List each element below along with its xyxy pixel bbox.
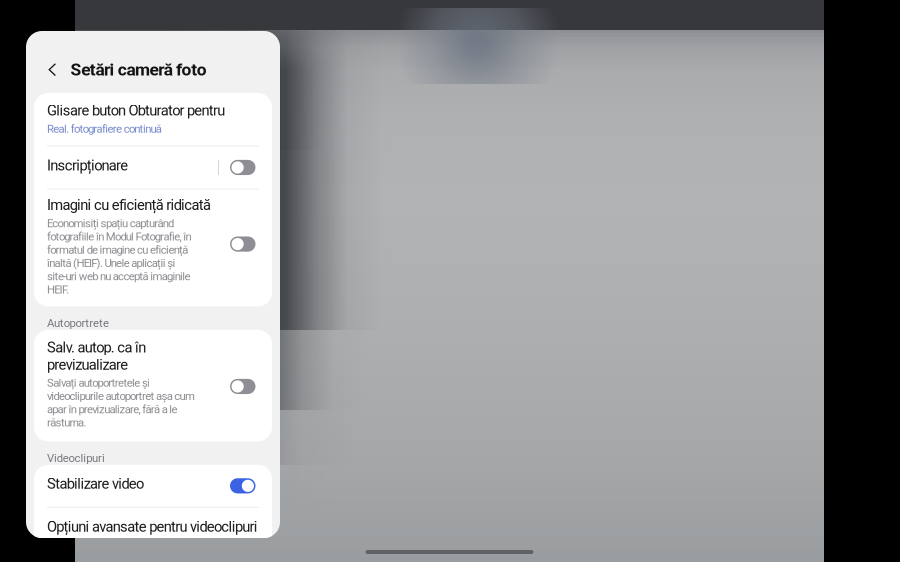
button[interactable]: Imagini cu eficiență ridicată	[34, 189, 272, 306]
staticText: Salvați autoportretele și videoclipurile…	[47, 376, 195, 429]
staticText: Autoportrete	[47, 317, 109, 330]
button[interactable]: Glisare buton Obturator pentru	[34, 93, 272, 145]
button[interactable]: Stabilizare video	[34, 465, 272, 507]
staticText: Videoclipuri	[47, 452, 105, 465]
staticText: Stabilizare video	[47, 475, 144, 492]
staticText: Opțiuni avansate pentru videoclipuri	[47, 518, 258, 535]
staticText: Inscripționare	[47, 157, 128, 174]
button[interactable]: Inscripționare	[34, 146, 272, 188]
staticText: Economisiți spațiu capturând fotografiil…	[47, 217, 191, 296]
staticText: Setări cameră foto	[71, 59, 207, 80]
staticText: Glisare buton Obturator pentru	[47, 102, 225, 119]
staticText: Real. fotografiere continuă	[47, 122, 162, 135]
staticText: Salv. autop. ca în previzualizare	[47, 339, 146, 373]
staticText: Imagini cu eficiență ridicată	[47, 196, 211, 214]
button[interactable]: Salv. autop. ca în previzualizare	[34, 330, 272, 441]
button[interactable]: Opțiuni avansate pentru videoclipuri	[34, 508, 272, 550]
button[interactable]: Setări cameră foto	[26, 31, 280, 93]
